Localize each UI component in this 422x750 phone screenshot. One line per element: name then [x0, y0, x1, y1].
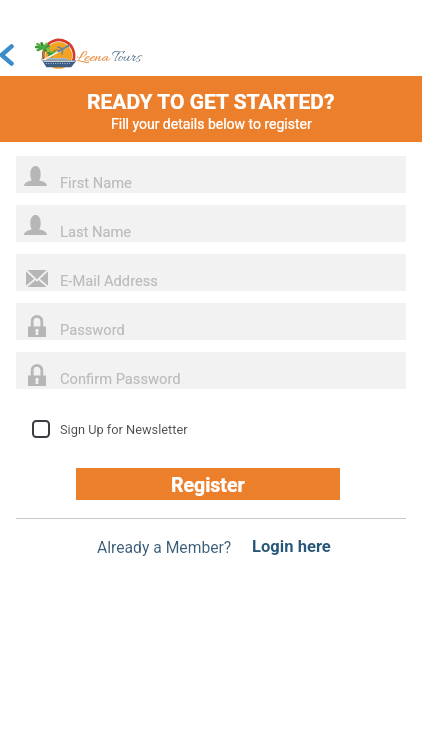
button[interactable]: Last Name: [16, 205, 406, 242]
button[interactable]: Login here: [252, 537, 331, 556]
staticText: Register: [171, 474, 245, 497]
button[interactable]: Confirm Password: [16, 352, 406, 389]
staticText: Tours: [112, 47, 141, 68]
button[interactable]: Back: [0, 34, 28, 76]
staticText: Sign Up for Newsletter: [60, 422, 188, 437]
staticText: Password: [60, 321, 125, 338]
staticText: First Name: [60, 174, 132, 191]
staticText: Confirm Password: [60, 370, 181, 387]
staticText: Already a Member?: [97, 538, 232, 556]
button[interactable]: E-Mail Address: [16, 254, 406, 291]
staticText: E-Mail Address: [60, 272, 158, 289]
staticText: Login here: [252, 537, 331, 556]
staticText: READY TO GET STARTED?: [87, 90, 335, 115]
button[interactable]: Password: [16, 303, 406, 340]
button[interactable]: Register: [76, 468, 340, 500]
staticText: Fill your details below to register: [111, 116, 312, 132]
staticText: Leena: [77, 47, 110, 68]
button[interactable]: First Name: [16, 156, 406, 193]
staticText: Last Name: [60, 223, 132, 240]
button[interactable]: Sign Up for Newsletter: [32, 419, 188, 439]
